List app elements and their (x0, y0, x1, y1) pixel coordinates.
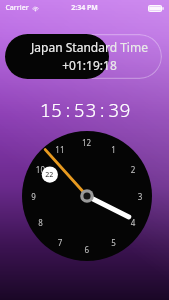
staticText: 15:53:39 (39, 97, 131, 121)
staticText: Carrier (5, 3, 29, 13)
staticText: +01:19:18 (62, 57, 117, 73)
staticText: 2:34 PM (71, 3, 98, 13)
button[interactable] (5, 34, 162, 79)
button[interactable] (5, 34, 109, 79)
staticText: Japan Standard Time (31, 39, 148, 55)
button[interactable]: Analog clock (0, 134, 169, 284)
